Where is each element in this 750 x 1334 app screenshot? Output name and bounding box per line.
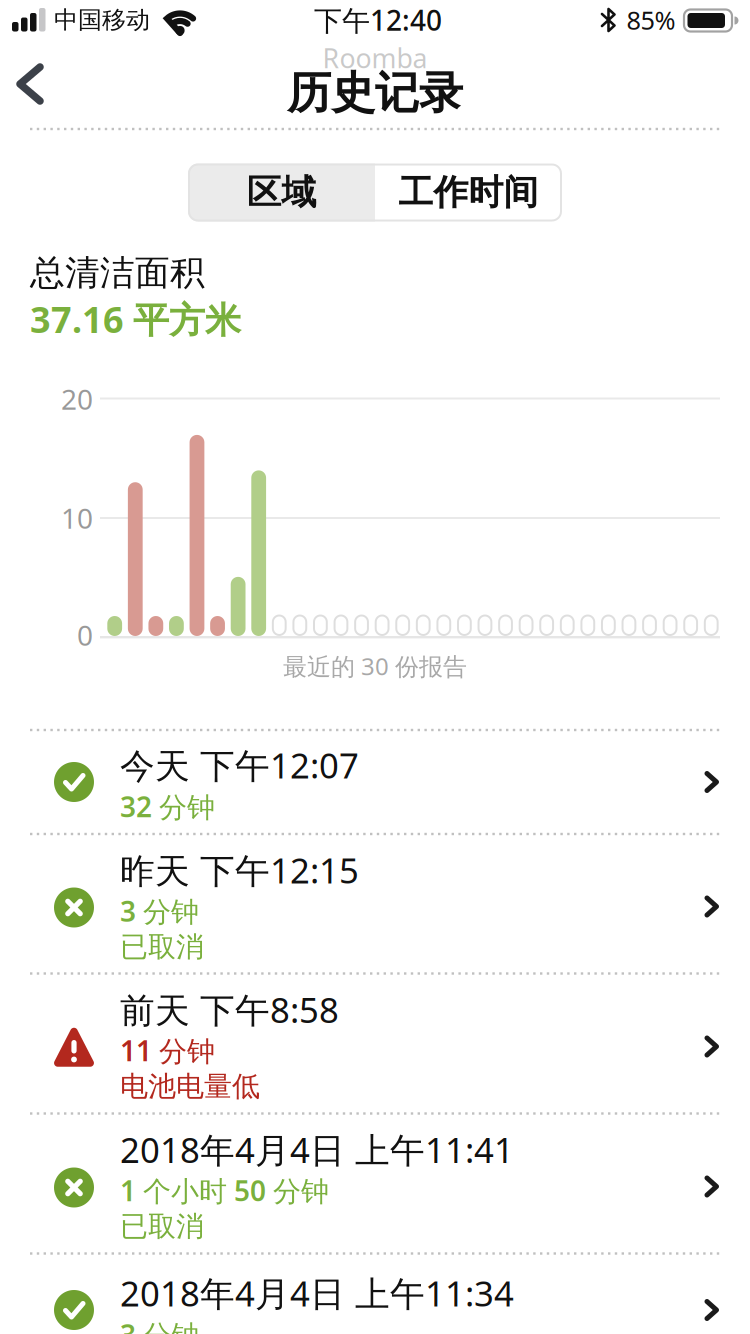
staticText: 1 个小时 50 分钟 bbox=[120, 1172, 329, 1209]
staticText: 32 分钟 bbox=[120, 788, 215, 825]
staticText: 3 分钟 bbox=[120, 892, 199, 930]
staticText: Roomba bbox=[322, 40, 427, 76]
button[interactable]: 2018年4月4日 上午11:34 bbox=[0, 1258, 750, 1334]
staticText: 历史记录 bbox=[287, 66, 463, 120]
staticText: 2018年4月4日 上午11:41 bbox=[120, 1126, 514, 1172]
staticText: 昨天 下午12:15 bbox=[120, 847, 359, 893]
staticText: 电池电量低 bbox=[120, 1069, 260, 1104]
staticText: 85% bbox=[626, 3, 675, 37]
staticText: 今天 下午12:07 bbox=[120, 742, 359, 788]
staticText: 11 分钟 bbox=[120, 1032, 215, 1069]
button[interactable]: 前天 下午8:58 bbox=[0, 973, 750, 1113]
staticText: 10 bbox=[61, 499, 93, 537]
staticText: 下午12:40 bbox=[314, 1, 442, 39]
button[interactable]: 今天 下午12:07 bbox=[0, 730, 750, 833]
staticText: 已取消 bbox=[120, 1209, 204, 1244]
staticText: 工作时间 bbox=[398, 171, 538, 214]
staticText: 3 分钟 bbox=[120, 1316, 199, 1334]
staticText: 2018年4月4日 上午11:34 bbox=[120, 1270, 514, 1316]
staticText: 37.16 平方米 bbox=[30, 295, 241, 343]
button[interactable]: 工作时间 bbox=[375, 163, 562, 221]
staticText: 已取消 bbox=[120, 930, 204, 964]
staticText: 前天 下午8:58 bbox=[120, 986, 339, 1032]
button[interactable]: Back bbox=[0, 49, 60, 119]
button[interactable]: 昨天 下午12:15 bbox=[0, 834, 750, 973]
staticText: 中国移动 bbox=[54, 5, 150, 35]
staticText: 总清洁面积 bbox=[30, 252, 205, 294]
button[interactable]: 2018年4月4日 上午11:41 bbox=[0, 1113, 750, 1253]
staticText: 0 bbox=[77, 616, 93, 654]
button[interactable]: 区域 bbox=[188, 163, 375, 221]
staticText: 20 bbox=[61, 380, 93, 418]
staticText: 区域 bbox=[246, 171, 316, 214]
staticText: 最近的 30 份报告 bbox=[283, 650, 467, 682]
